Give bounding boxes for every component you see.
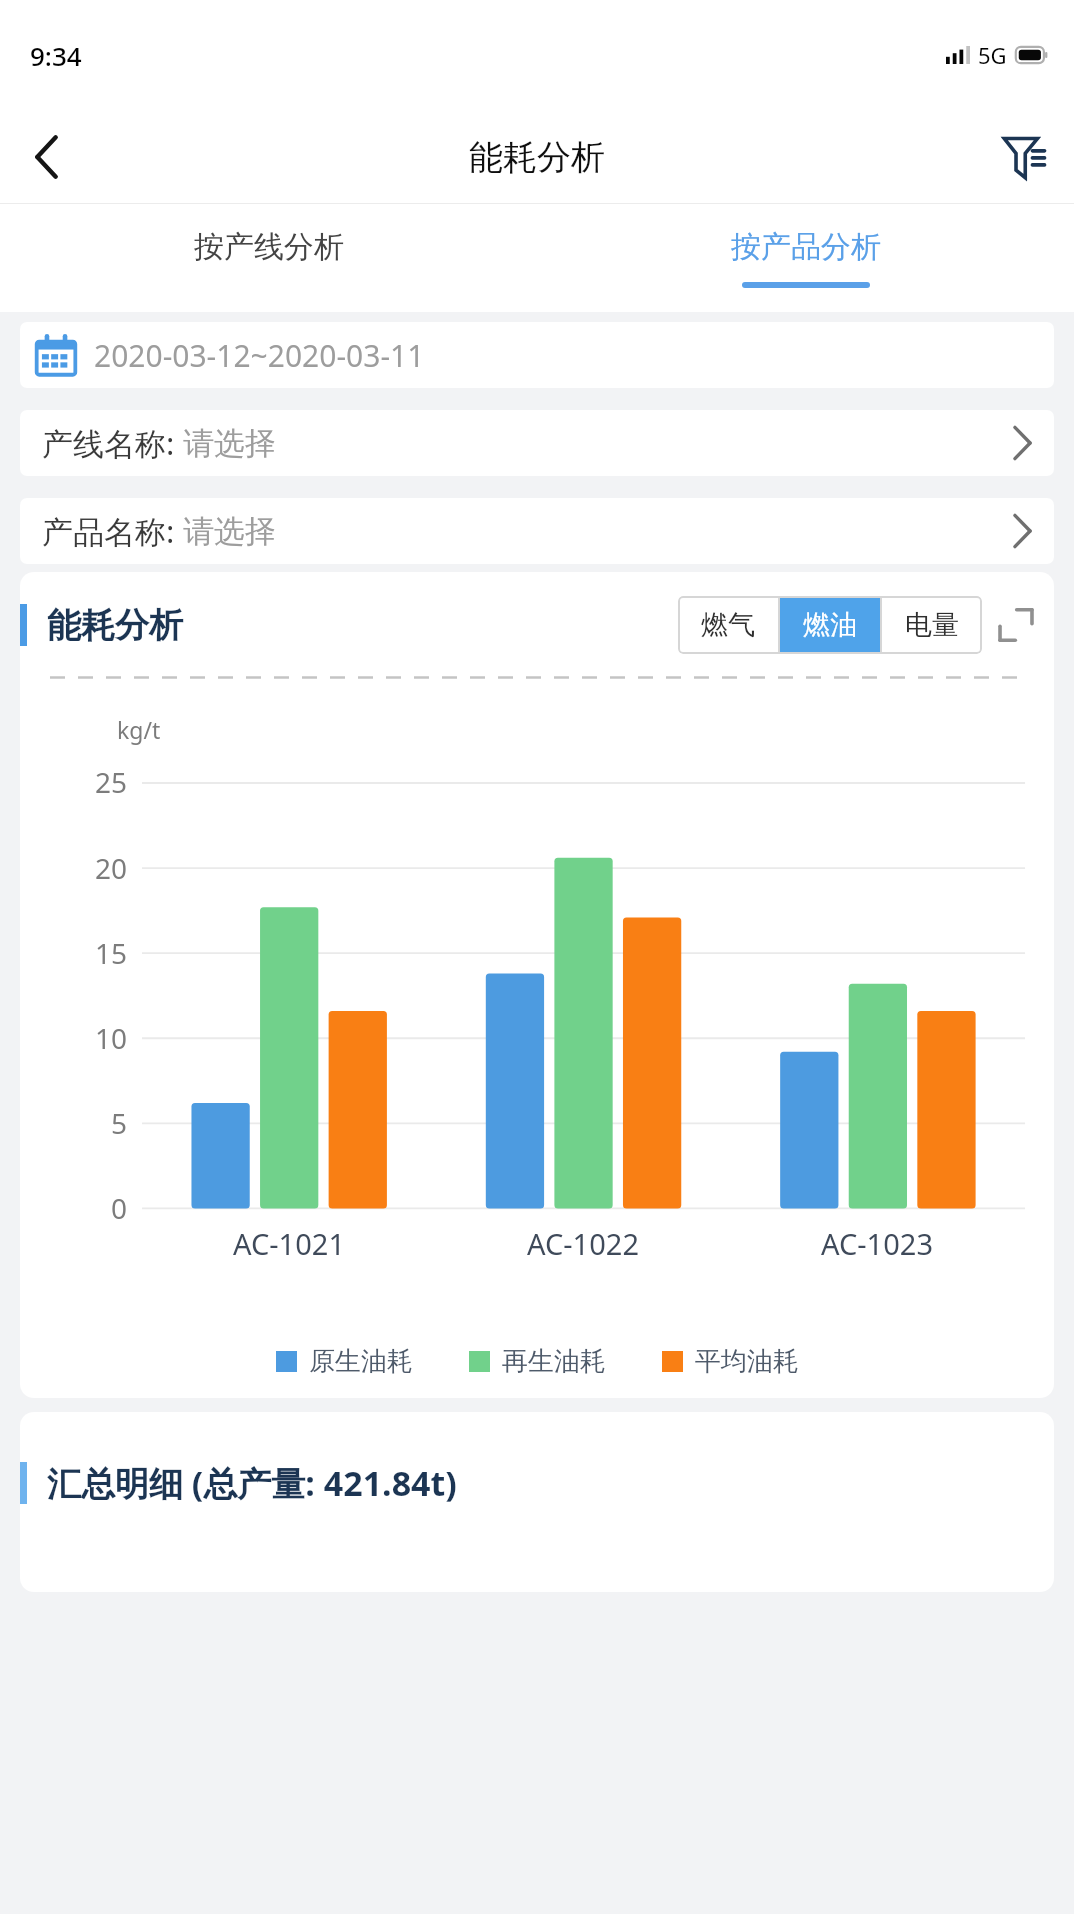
button[interactable]: Filter	[974, 110, 1074, 204]
staticText: 10	[95, 1019, 128, 1057]
staticText: 5G	[978, 40, 1007, 70]
staticText: 产品名称:	[42, 510, 183, 552]
staticText: 20	[95, 849, 128, 887]
staticText: 电量	[905, 608, 959, 642]
button[interactable]: Expand chart	[992, 601, 1040, 649]
staticText: 5	[111, 1104, 128, 1142]
button[interactable]: 燃油	[780, 596, 880, 654]
staticText: 25	[95, 763, 128, 801]
staticText: 能耗分析	[469, 136, 605, 179]
button[interactable]: Back	[0, 110, 92, 204]
staticText: AC-1022	[527, 1224, 639, 1263]
staticText: 原生油耗	[309, 1345, 413, 1378]
staticText: 燃油	[803, 608, 857, 642]
staticText: AC-1023	[821, 1224, 933, 1263]
button[interactable]: 产线名称:	[20, 410, 1054, 476]
staticText: kg/t	[117, 714, 161, 745]
staticText: AC-1021	[233, 1224, 345, 1263]
staticText: 请选择	[183, 512, 276, 551]
staticText: 再生油耗	[502, 1345, 606, 1378]
staticText: 9:34	[30, 38, 82, 73]
staticText: 燃气	[701, 608, 755, 642]
button[interactable]: 2020-03-12~2020-03-11	[20, 322, 1054, 388]
staticText: 2020-03-12~2020-03-11	[94, 335, 425, 376]
staticText: 按产品分析	[731, 228, 881, 266]
button[interactable]: 产品名称:	[20, 498, 1054, 564]
staticText: 按产线分析	[194, 228, 344, 266]
button[interactable]: 按产品分析	[537, 204, 1074, 312]
staticText: 平均油耗	[695, 1345, 799, 1378]
staticText: 15	[95, 934, 128, 972]
staticText: 能耗分析	[47, 604, 183, 647]
staticText: 产线名称:	[42, 422, 183, 464]
button[interactable]: 电量	[882, 596, 982, 654]
staticText: 请选择	[183, 424, 276, 463]
staticText: 汇总明细 (总产量: 421.84t)	[47, 1460, 457, 1506]
button[interactable]: 按产线分析	[0, 204, 537, 312]
button[interactable]: 燃气	[678, 596, 778, 654]
staticText: 0	[111, 1189, 128, 1227]
